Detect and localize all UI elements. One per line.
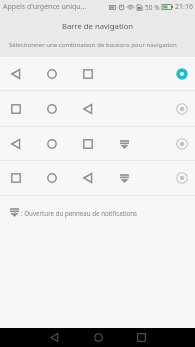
button[interactable]	[0, 57, 195, 91]
button[interactable]: Recents	[129, 328, 153, 347]
staticText: Barre de navigation	[62, 21, 134, 31]
button[interactable]	[0, 161, 195, 196]
button[interactable]	[0, 127, 195, 161]
button[interactable]	[0, 91, 195, 127]
staticText: 50 %	[145, 3, 160, 12]
button[interactable]: Home	[86, 328, 110, 347]
staticText: 21:16	[175, 2, 193, 12]
button[interactable]: Back	[42, 328, 66, 347]
staticText: : Ouverture du panneau de notifications	[21, 209, 138, 217]
staticText: Sélectionner une combinaison de boutons …	[9, 40, 177, 48]
staticText: Appels d'urgence uniqu...	[3, 2, 87, 12]
